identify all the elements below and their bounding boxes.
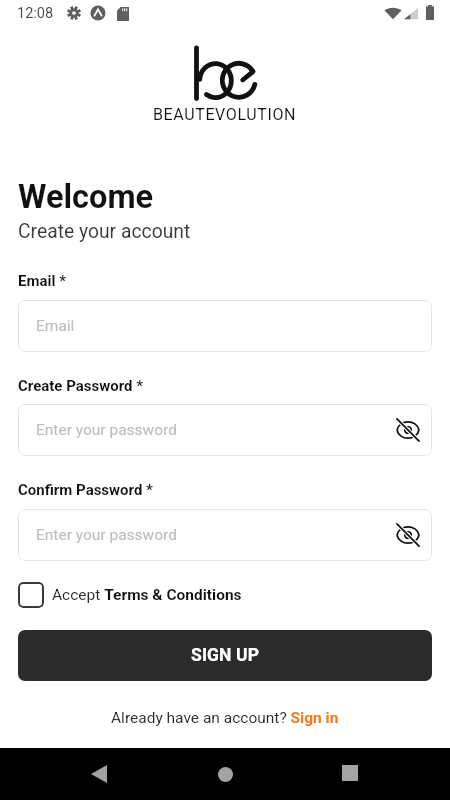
button[interactable]: Recent apps xyxy=(326,749,374,797)
staticText: Already have an account? Sign in xyxy=(111,709,339,727)
button[interactable]: Show password xyxy=(393,415,423,445)
button[interactable]: Home xyxy=(201,750,249,798)
staticText: Confirm Password * xyxy=(18,481,153,499)
staticText: 12:08 xyxy=(17,5,54,22)
staticText: Email * xyxy=(18,272,66,290)
staticText: Enter your password xyxy=(36,421,177,439)
staticText: Welcome xyxy=(18,178,154,216)
staticText: Enter your password xyxy=(36,526,177,544)
button[interactable]: Enter your password xyxy=(18,509,432,561)
staticText: Accept Terms & Conditions xyxy=(52,586,242,604)
staticText: Create your account xyxy=(18,220,191,243)
staticText: SIGN UP xyxy=(191,645,260,666)
button[interactable]: Already have an account? Sign in xyxy=(111,709,339,727)
button[interactable]: Accept Terms & Conditions xyxy=(18,581,432,608)
button[interactable]: Show password xyxy=(393,520,423,550)
button[interactable]: Email xyxy=(18,300,432,352)
staticText: Create Password * xyxy=(18,377,144,395)
button[interactable]: Enter your password xyxy=(18,404,432,456)
button[interactable]: SIGN UP xyxy=(18,630,432,681)
button[interactable]: Back xyxy=(75,750,123,798)
staticText: BEAUTEVOLUTION xyxy=(153,105,297,124)
staticText: Email xyxy=(36,317,75,335)
